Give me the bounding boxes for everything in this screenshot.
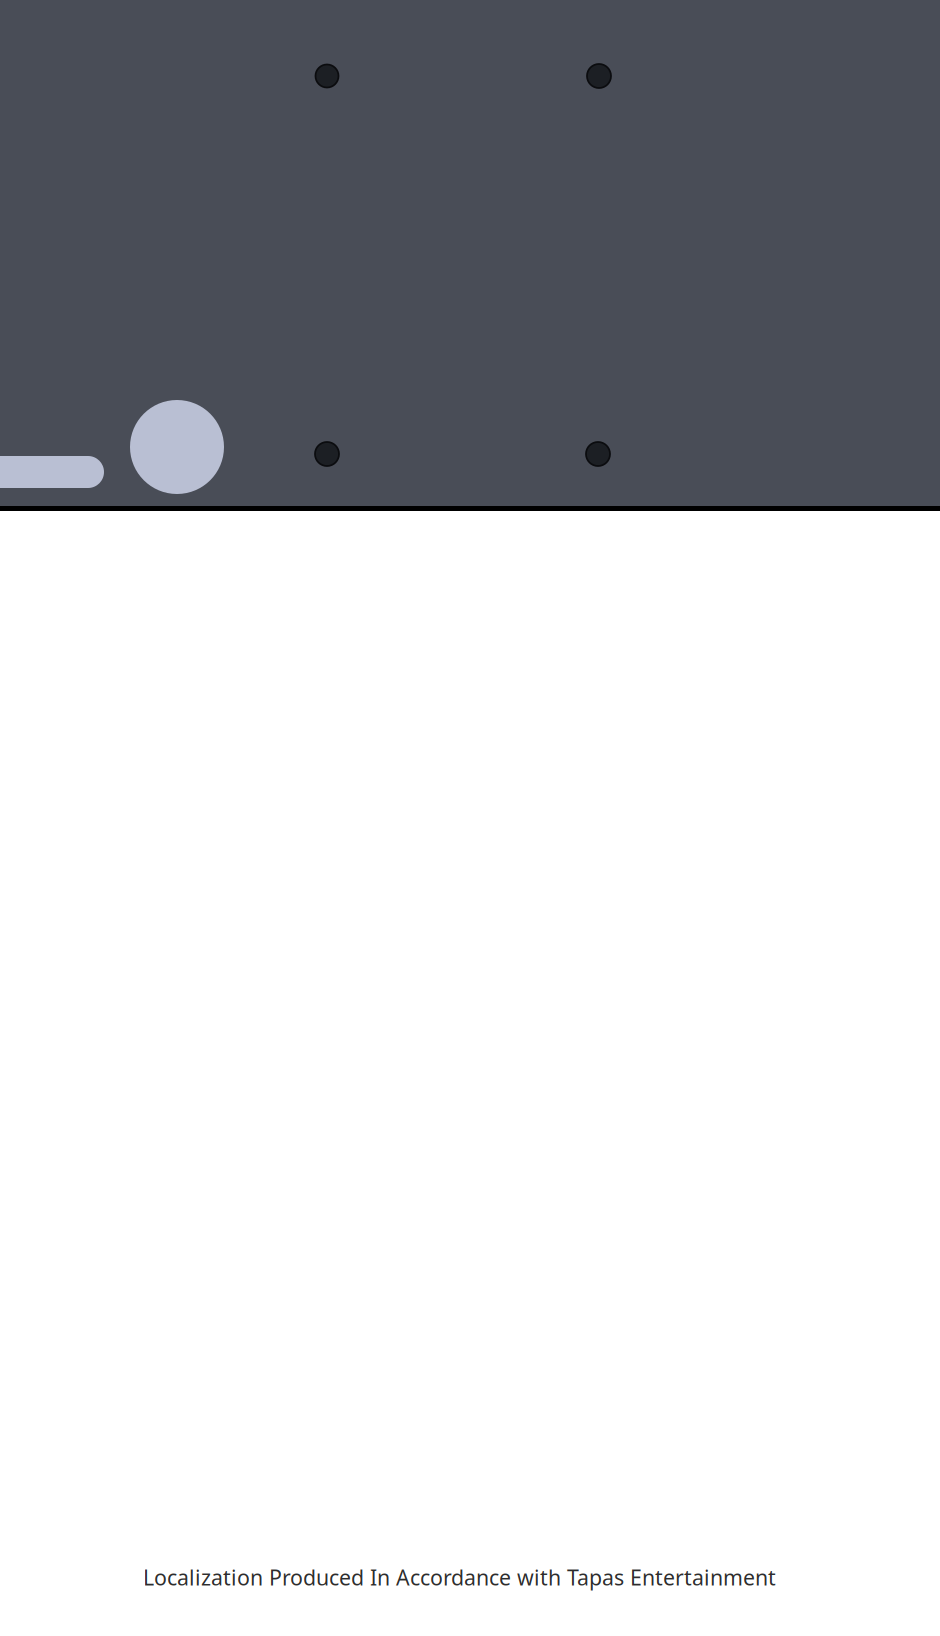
button[interactable]: Episode artwork [0,0,940,506]
staticText: Localization Produced In Accordance with… [143,1563,776,1591]
